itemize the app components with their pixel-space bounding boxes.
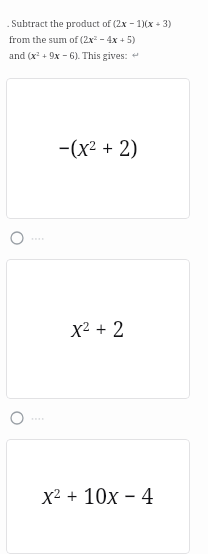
button[interactable]: Option: x squared plus 10 x minus 4 (6, 439, 190, 554)
staticText: −(x2 + 2) (58, 134, 138, 163)
button[interactable]: Select option 2 (6, 407, 190, 429)
staticText: x2 + 2 (71, 315, 125, 344)
staticText: and (x2 + 9x − 6). This gives: (9, 49, 130, 61)
button[interactable]: Select option 1 (6, 227, 190, 249)
staticText: from the sum of (2x2 − 4x + 5) (9, 33, 136, 45)
button[interactable]: Option: x squared plus 2 (6, 259, 190, 399)
button[interactable]: Option: minus open paren x squared plus … (6, 78, 190, 219)
staticText: x2 + 10x − 4 (42, 482, 154, 511)
staticText: . Subtract the product of (2x − 1)(x + 3… (7, 17, 172, 29)
